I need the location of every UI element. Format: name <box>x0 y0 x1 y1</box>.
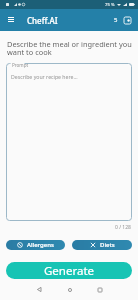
staticText: Allergens <box>27 241 54 249</box>
button[interactable]: Home <box>63 283 76 296</box>
staticText: Describe your recipe here... <box>11 73 78 80</box>
staticText: Describe the meal or ingredient you want… <box>7 39 134 57</box>
staticText: Generate <box>44 263 95 279</box>
button[interactable]: Allergens <box>6 240 65 250</box>
staticText: 0 / 128 <box>115 224 131 231</box>
staticText: Prompt <box>12 62 29 68</box>
button[interactable]: Open navigation menu <box>4 13 18 27</box>
staticText: Cheff.AI <box>27 15 58 26</box>
button[interactable]: Back <box>32 283 45 296</box>
staticText: 5 <box>114 16 118 24</box>
staticText: 75 % <box>105 2 115 8</box>
button[interactable]: Describe your recipe here... <box>6 63 132 221</box>
button[interactable]: Generate <box>6 262 132 279</box>
staticText: Diets <box>100 241 115 249</box>
button[interactable]: Recent apps <box>93 283 106 296</box>
button[interactable]: Diets <box>72 240 132 250</box>
button[interactable]: Credits <box>121 14 133 26</box>
